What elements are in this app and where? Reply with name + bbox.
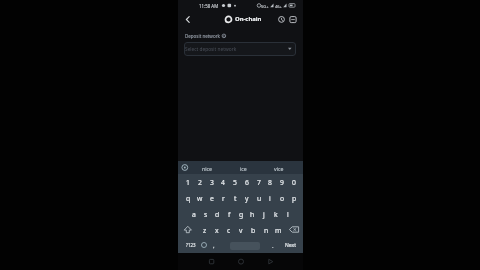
button[interactable]: u <box>253 191 265 205</box>
button[interactable]: v <box>235 223 247 237</box>
staticText: vice <box>274 165 284 172</box>
button[interactable]: w <box>194 191 206 205</box>
button[interactable]: Next <box>260 238 320 252</box>
staticText: 46+ <box>275 4 282 9</box>
button[interactable]: l <box>282 207 294 221</box>
button[interactable]: 5 <box>229 175 241 189</box>
button[interactable]: . <box>243 239 303 253</box>
button[interactable]: z <box>199 223 211 237</box>
button[interactable]: nice <box>177 161 237 175</box>
button[interactable]: t <box>229 191 241 205</box>
staticText: a <box>192 210 196 219</box>
button[interactable]: ?123 <box>161 238 221 252</box>
button[interactable] <box>184 42 296 56</box>
button[interactable] <box>234 255 247 268</box>
staticText: 5 <box>233 178 237 187</box>
button[interactable]: d <box>211 207 223 221</box>
staticText: k <box>274 210 278 219</box>
button[interactable] <box>276 13 287 25</box>
button[interactable] <box>182 13 194 25</box>
button[interactable] <box>264 255 277 268</box>
staticText: Select deposit network <box>185 46 237 53</box>
staticText: ice <box>240 165 247 172</box>
button[interactable] <box>287 13 299 25</box>
staticText: j <box>263 210 265 219</box>
button[interactable]: x <box>211 223 223 237</box>
button[interactable]: e <box>206 191 218 205</box>
button[interactable]: 3 <box>206 175 218 189</box>
button[interactable]: j <box>258 207 270 221</box>
staticText: . <box>272 242 274 250</box>
button[interactable]: 2 <box>194 175 206 189</box>
button[interactable]: r <box>217 191 229 205</box>
staticText: Next <box>285 242 296 249</box>
button[interactable]: f <box>223 207 235 221</box>
staticText: y <box>245 194 249 203</box>
staticText: 1 <box>186 178 190 187</box>
staticText: 11:58 AM <box>199 3 219 9</box>
button[interactable]: m <box>272 223 284 237</box>
button[interactable]: 9 <box>276 175 288 189</box>
staticText: n <box>264 226 269 235</box>
staticText: c <box>227 226 231 235</box>
staticText: h <box>250 210 255 219</box>
button[interactable]: q <box>182 191 194 205</box>
button[interactable]: n <box>260 223 272 237</box>
button[interactable]: y <box>241 191 253 205</box>
staticText: f <box>228 210 231 219</box>
button[interactable]: 0 <box>288 175 300 189</box>
button[interactable]: o <box>276 191 288 205</box>
staticText: , <box>213 242 215 250</box>
button[interactable] <box>205 255 218 268</box>
button[interactable]: 4 <box>217 175 229 189</box>
button[interactable]: b <box>247 223 259 237</box>
staticText: r <box>222 194 225 203</box>
staticText: 9 <box>280 178 284 187</box>
button[interactable] <box>198 239 210 251</box>
staticText: On-chain <box>235 15 262 23</box>
button[interactable] <box>288 223 302 236</box>
button[interactable]: vice <box>249 161 309 175</box>
button[interactable]: h <box>246 207 258 221</box>
staticText: t <box>234 194 237 203</box>
staticText: e <box>210 194 214 203</box>
button[interactable]: 7 <box>253 175 265 189</box>
button[interactable]: a <box>188 207 200 221</box>
staticText: g <box>239 210 244 219</box>
button[interactable]: s <box>200 207 212 221</box>
staticText: 0 <box>292 178 296 187</box>
staticText: m <box>275 226 282 235</box>
staticText: x <box>215 226 219 235</box>
staticText: 4 <box>221 178 225 187</box>
button[interactable]: p <box>288 191 300 205</box>
staticText: 2 <box>198 178 202 187</box>
staticText: z <box>203 226 207 235</box>
staticText: v <box>239 226 243 235</box>
staticText: d <box>215 210 220 219</box>
button[interactable]: 8 <box>264 175 276 189</box>
button[interactable] <box>181 223 195 236</box>
staticText: l <box>287 210 289 219</box>
button[interactable]: 1 <box>182 175 194 189</box>
staticText: u <box>257 194 262 203</box>
button[interactable]: ice <box>213 161 273 175</box>
staticText: p <box>292 194 297 203</box>
staticText: s <box>204 210 208 219</box>
staticText: o <box>280 194 285 203</box>
staticText: 7 <box>257 178 261 187</box>
button[interactable]: i <box>264 191 276 205</box>
staticText: 5G+ <box>261 4 269 9</box>
staticText: w <box>197 194 203 203</box>
staticText: b <box>251 226 256 235</box>
button[interactable]: k <box>270 207 282 221</box>
staticText: q <box>186 194 191 203</box>
button[interactable]: c <box>223 223 235 237</box>
button[interactable]: 6 <box>241 175 253 189</box>
staticText: 8 <box>268 178 272 187</box>
staticText: 3 <box>210 178 214 187</box>
button[interactable]: , <box>184 239 244 253</box>
button[interactable]: g <box>235 207 247 221</box>
staticText: nice <box>202 165 212 172</box>
staticText: ?123 <box>186 242 196 248</box>
